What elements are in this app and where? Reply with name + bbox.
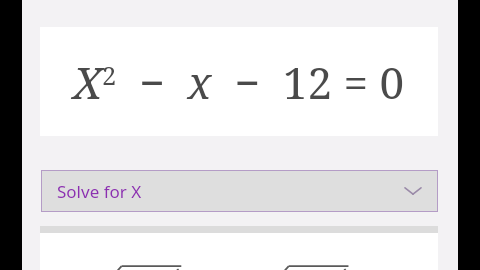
staticText: X2 − x − 12 = 0 <box>73 52 405 112</box>
other: Expand options <box>398 176 428 206</box>
staticText: Solve for X <box>57 180 142 203</box>
button[interactable]: Solve for X <box>41 170 438 212</box>
